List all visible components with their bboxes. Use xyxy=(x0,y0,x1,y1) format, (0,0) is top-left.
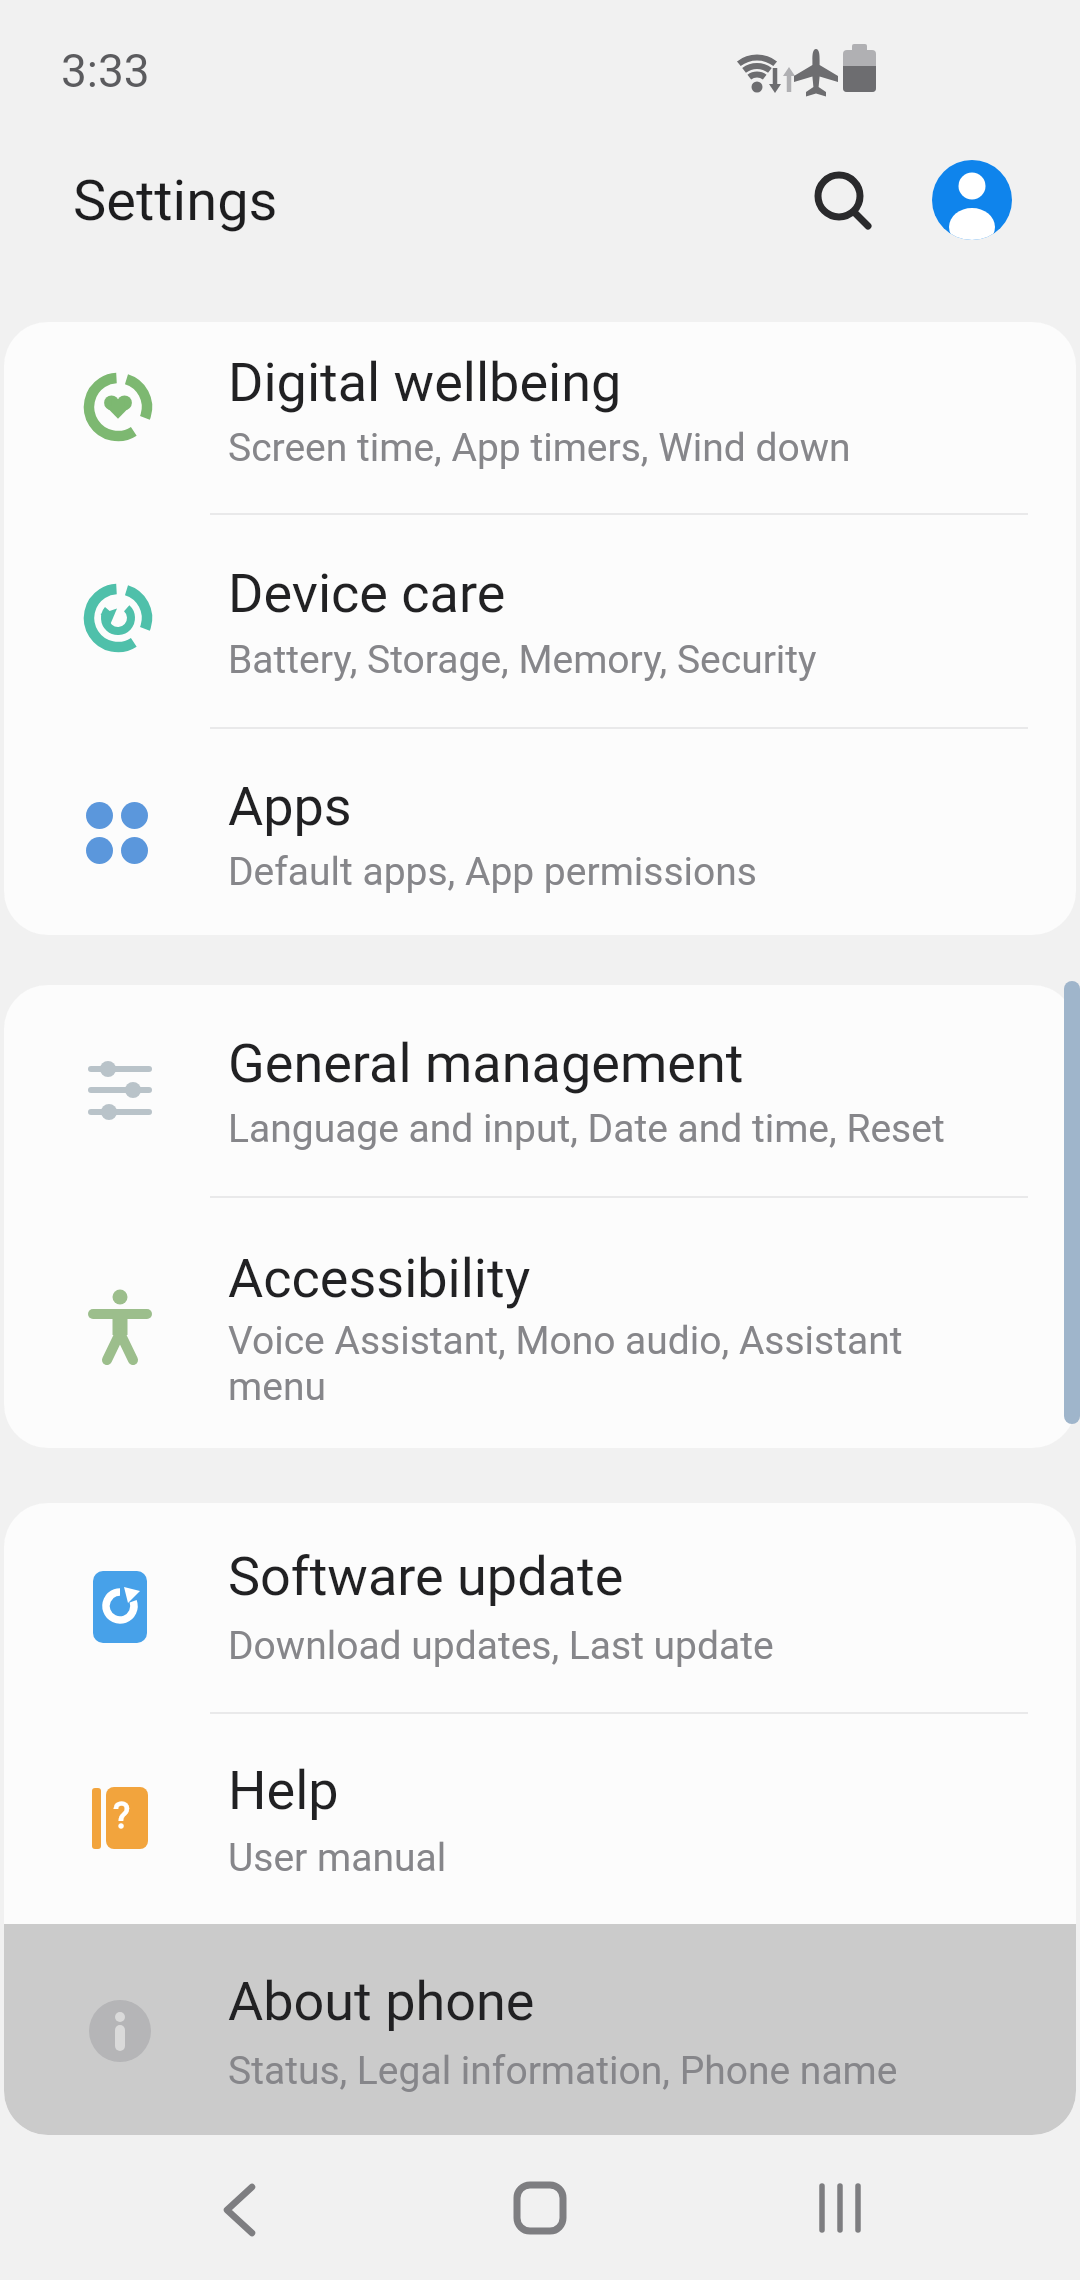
button[interactable] xyxy=(4,1503,1076,1712)
button[interactable] xyxy=(480,2160,600,2260)
staticText: Software update xyxy=(228,1545,624,1608)
button[interactable] xyxy=(932,160,1012,240)
staticText: General management xyxy=(228,1032,744,1095)
button[interactable] xyxy=(4,515,1076,727)
button[interactable] xyxy=(4,1196,1076,1448)
staticText: User manual xyxy=(228,1835,447,1881)
staticText: Language and input, Date and time, Reset xyxy=(228,1106,945,1152)
button[interactable] xyxy=(4,1924,1076,2135)
staticText: Device care xyxy=(228,562,506,625)
staticText: Screen time, App timers, Wind down xyxy=(228,425,851,471)
staticText: Settings xyxy=(73,168,278,234)
staticText: Status, Legal information, Phone name xyxy=(228,2048,898,2094)
button[interactable] xyxy=(4,985,1076,1196)
staticText: Voice Assistant, Mono audio, Assistant m… xyxy=(228,1318,903,1410)
button[interactable] xyxy=(4,727,1076,935)
staticText: Download updates, Last update xyxy=(228,1623,774,1669)
staticText: ? xyxy=(113,1795,131,1837)
staticText: Accessibility xyxy=(228,1247,531,1310)
staticText: About phone xyxy=(228,1970,535,2033)
button[interactable] xyxy=(180,2160,300,2260)
staticText: Help xyxy=(228,1759,339,1822)
staticText: Battery, Storage, Memory, Security xyxy=(228,637,817,683)
staticText: Digital wellbeing xyxy=(228,351,622,414)
button[interactable] xyxy=(799,156,887,244)
button[interactable] xyxy=(4,322,1076,513)
staticText: Apps xyxy=(228,775,352,838)
staticText: 3:33 xyxy=(61,44,150,98)
button[interactable] xyxy=(4,1712,1076,1924)
button[interactable] xyxy=(780,2160,900,2260)
staticText: Default apps, App permissions xyxy=(228,849,757,895)
